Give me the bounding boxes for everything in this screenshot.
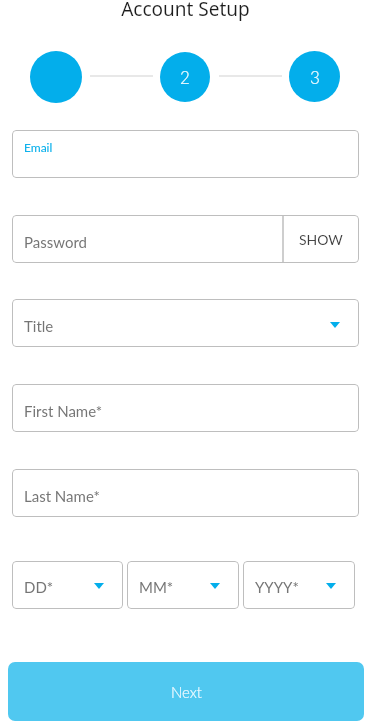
staticText: First Name* [24, 402, 103, 420]
button[interactable]: Step 1 [30, 51, 82, 103]
staticText: SHOW [299, 231, 343, 248]
button[interactable]: Next [8, 662, 364, 721]
staticText: Password [24, 233, 87, 251]
button[interactable]: Title [12, 299, 359, 347]
button[interactable]: Step 3 [289, 51, 340, 102]
staticText: Next [171, 683, 202, 701]
staticText: Last Name* [24, 487, 100, 505]
staticText: DD* [24, 578, 54, 596]
button[interactable]: First Name* [12, 384, 359, 432]
staticText: Email [24, 140, 53, 154]
button[interactable]: Email [12, 130, 359, 178]
staticText: YYYY* [255, 578, 299, 596]
staticText: Account Setup [0, 0, 371, 22]
button[interactable]: MM* [127, 561, 239, 609]
button[interactable]: DD* [12, 561, 123, 609]
staticText: 3 [310, 67, 320, 87]
button[interactable]: SHOW [283, 215, 359, 263]
button[interactable]: YYYY* [243, 561, 355, 609]
button[interactable]: Step 2 [160, 52, 210, 102]
staticText: Title [24, 317, 54, 335]
staticText: MM* [139, 578, 174, 596]
staticText: 2 [180, 67, 190, 87]
button[interactable]: Password [12, 215, 359, 263]
button[interactable]: Last Name* [12, 469, 359, 517]
